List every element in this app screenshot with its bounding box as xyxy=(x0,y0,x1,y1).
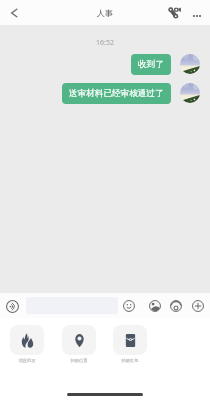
button[interactable]: More xyxy=(189,297,207,315)
button[interactable] xyxy=(180,54,200,74)
button[interactable]: 拍摄位置 xyxy=(62,325,96,363)
staticText: 人事 xyxy=(97,8,113,18)
button[interactable]: 收到了 xyxy=(131,54,171,75)
button[interactable]: 消息群发 xyxy=(10,325,44,363)
staticText: 拍摄红包 xyxy=(121,358,139,363)
button[interactable]: More options xyxy=(188,0,206,25)
button[interactable]: Voice input xyxy=(3,297,21,315)
button[interactable]: Video call xyxy=(165,0,183,25)
button[interactable]: 拍摄红包 xyxy=(113,325,147,363)
staticText: 收到了 xyxy=(138,59,164,70)
staticText: 消息群发 xyxy=(18,358,36,363)
button[interactable] xyxy=(180,83,200,103)
button[interactable]: Camera xyxy=(167,297,185,315)
button[interactable]: 送审材料已经审核通过了 xyxy=(62,83,171,104)
button[interactable]: Back xyxy=(0,0,28,25)
staticText: 送审材料已经审核通过了 xyxy=(69,88,164,99)
staticText: 16:52 xyxy=(0,38,210,48)
button[interactable]: Photos xyxy=(146,297,164,315)
staticText: 拍摄位置 xyxy=(70,358,88,363)
button[interactable]: Emoji xyxy=(120,297,138,315)
